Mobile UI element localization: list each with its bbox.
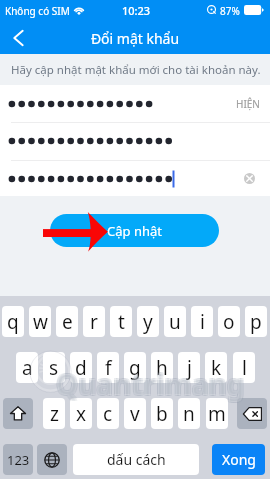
staticText: HIỆN [236, 97, 260, 111]
button[interactable]: dấu cách [73, 444, 199, 475]
button[interactable]: Backspace [237, 398, 267, 429]
staticText: y [143, 309, 153, 335]
staticText: i [200, 309, 205, 335]
staticText: s [49, 355, 59, 381]
staticText: f [105, 355, 112, 381]
button[interactable]: i [191, 306, 213, 337]
staticText: Quantrimang [55, 364, 244, 402]
staticText: b [156, 401, 168, 427]
button[interactable]: w [29, 306, 51, 337]
staticText: Quantrimang [56, 365, 245, 403]
staticText: 10:23 [122, 3, 151, 18]
button[interactable]: g [124, 352, 146, 383]
staticText: 87% [220, 4, 240, 18]
staticText: Cập nhật [107, 222, 162, 240]
staticText: c [103, 401, 113, 427]
staticText: z [50, 401, 59, 427]
staticText: l [242, 355, 247, 381]
staticText: Hãy cập nhật mật khẩu mới cho tài khoản … [11, 62, 261, 78]
button[interactable]: t [110, 306, 132, 337]
button[interactable]: q [2, 306, 24, 337]
button[interactable]: HIỆN [226, 85, 270, 122]
button[interactable]: o [218, 306, 240, 337]
button[interactable]: d [70, 352, 92, 383]
button[interactable]: r [83, 306, 105, 337]
button[interactable]: 123 [3, 444, 33, 475]
button[interactable]: l [233, 352, 255, 383]
button[interactable]: y [137, 306, 159, 337]
staticText: dấu cách [107, 450, 166, 469]
button[interactable]: a [16, 352, 38, 383]
staticText: e [62, 309, 73, 335]
button[interactable]: Cập nhật [50, 214, 219, 247]
staticText: Xong [222, 450, 256, 469]
staticText: Quantrimang [55, 366, 244, 404]
staticText: t [118, 309, 125, 335]
staticText: Quantrimang [57, 364, 246, 402]
staticText: q [7, 309, 19, 335]
staticText: w [33, 309, 48, 335]
staticText: Đổi mật khẩu [0, 29, 270, 48]
staticText: u [169, 309, 181, 335]
button[interactable]: Clear text [238, 160, 261, 197]
staticText: d [75, 355, 87, 381]
staticText: o [223, 309, 235, 335]
button[interactable]: e [56, 306, 78, 337]
staticText: Không có SIM [5, 4, 70, 18]
button[interactable]: Back [2, 22, 34, 54]
button[interactable]: x [70, 398, 92, 429]
button[interactable]: s [43, 352, 65, 383]
button[interactable]: z [43, 398, 65, 429]
staticText: k [211, 355, 222, 381]
staticText: h [156, 355, 168, 381]
staticText: r [90, 309, 98, 335]
staticText: j [187, 355, 192, 381]
button[interactable]: p [245, 306, 267, 337]
button[interactable]: v [124, 398, 146, 429]
button[interactable]: Switch keyboard language [37, 444, 67, 475]
staticText: g [129, 355, 141, 381]
staticText: a [22, 355, 33, 381]
button[interactable]: c [97, 398, 119, 429]
button[interactable]: n [178, 398, 200, 429]
button[interactable]: u [164, 306, 186, 337]
button[interactable]: Shift [3, 398, 33, 429]
button[interactable]: k [205, 352, 227, 383]
button[interactable]: j [178, 352, 200, 383]
button[interactable]: Xong [212, 444, 265, 475]
staticText: p [250, 309, 262, 335]
staticText: n [183, 401, 195, 427]
staticText: x [76, 401, 87, 427]
staticText: v [130, 401, 140, 427]
button[interactable]: f [97, 352, 119, 383]
button[interactable]: b [151, 398, 173, 429]
button[interactable]: m [206, 398, 228, 429]
staticText: m [208, 401, 226, 427]
staticText: 123 [7, 451, 30, 469]
button[interactable]: h [151, 352, 173, 383]
staticText: Quantrimang [57, 366, 246, 404]
